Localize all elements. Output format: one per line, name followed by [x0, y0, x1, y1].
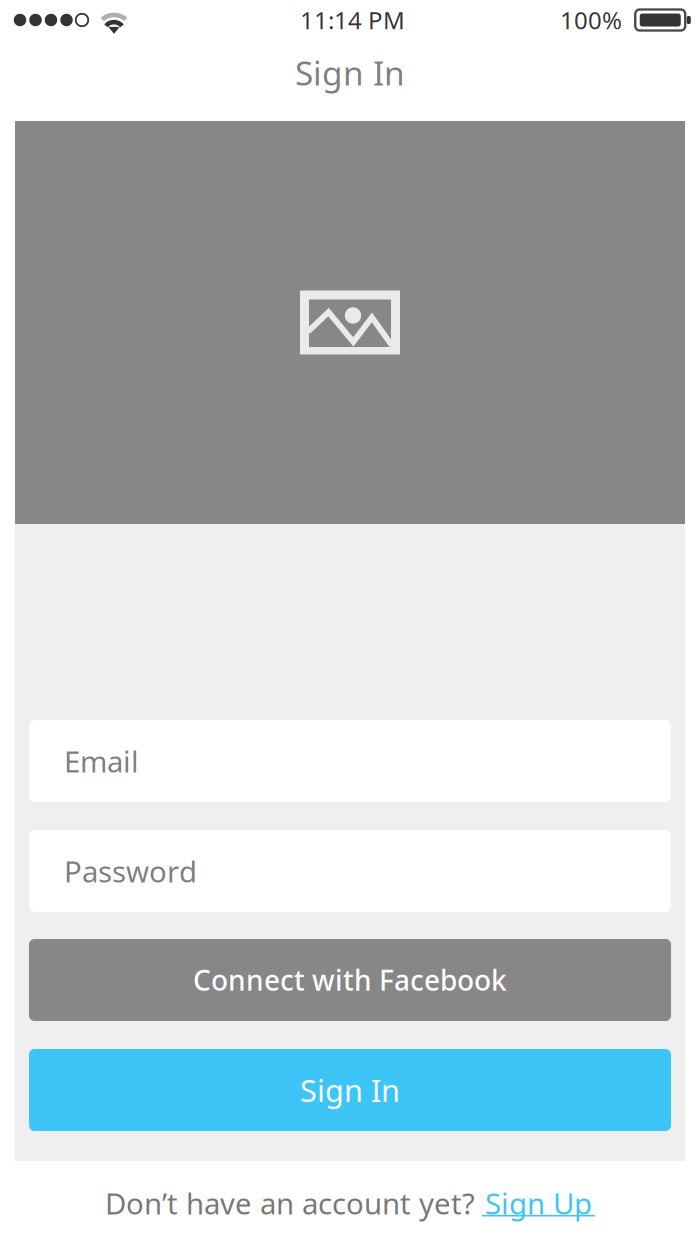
button[interactable]: Connect with Facebook: [29, 939, 671, 1021]
staticText: Sign In: [295, 50, 405, 95]
staticText: Don’t have an account yet?: [105, 1183, 475, 1222]
staticText: Connect with Facebook: [193, 961, 507, 999]
button[interactable]: Password: [29, 830, 671, 912]
button[interactable]: Email: [29, 720, 671, 802]
staticText: Sign Up: [485, 1183, 592, 1222]
button[interactable]: Sign Up: [482, 1183, 595, 1222]
staticText: 11:14 PM: [300, 4, 405, 36]
button[interactable]: Sign In: [29, 1049, 671, 1131]
staticText: Sign In: [300, 1070, 400, 1110]
staticText: Email: [64, 741, 139, 780]
staticText: 100%: [560, 4, 622, 36]
staticText: Password: [64, 851, 197, 890]
